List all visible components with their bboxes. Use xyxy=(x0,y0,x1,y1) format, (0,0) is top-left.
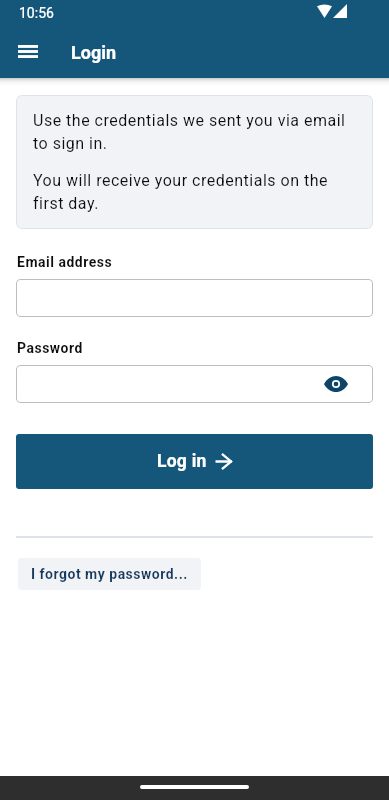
staticText: Email address xyxy=(17,254,113,270)
button[interactable]: Password input xyxy=(16,365,373,403)
staticText: You will receive your credentials on the… xyxy=(33,171,358,213)
button[interactable]: Show password xyxy=(320,368,352,400)
button[interactable]: Log in xyxy=(16,434,373,489)
staticText: I forgot my password... xyxy=(31,566,188,582)
button[interactable]: I forgot my password... xyxy=(18,558,201,590)
staticText: Password xyxy=(17,340,83,356)
button[interactable]: Open navigation menu xyxy=(4,29,52,77)
button[interactable]: Email address input xyxy=(16,279,373,317)
staticText: Log in xyxy=(157,451,207,472)
staticText: Login xyxy=(71,42,117,63)
staticText: 10:56 xyxy=(19,5,54,21)
staticText: Use the credentials we sent you via emai… xyxy=(33,111,358,153)
